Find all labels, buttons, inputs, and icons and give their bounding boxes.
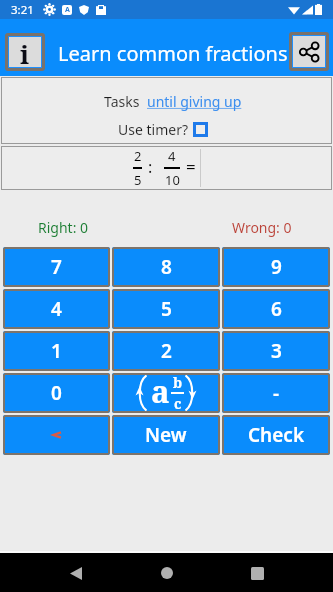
button[interactable]: 1 xyxy=(3,331,110,371)
button[interactable]: 4 xyxy=(3,289,110,329)
staticText: c xyxy=(174,394,182,413)
staticText: a xyxy=(151,373,170,410)
staticText: 1 xyxy=(51,338,62,364)
button[interactable]: Info xyxy=(9,37,41,67)
button[interactable]: Recents xyxy=(242,558,272,588)
staticText: 3 xyxy=(271,338,282,364)
staticText: 6 xyxy=(271,296,282,322)
staticText: 5 xyxy=(161,296,172,322)
button[interactable]: Check xyxy=(222,415,330,455)
button[interactable]: New xyxy=(112,415,220,455)
staticText: 2 xyxy=(134,147,142,165)
staticText: : xyxy=(148,156,153,178)
staticText: Wrong: 0 xyxy=(232,218,292,237)
button[interactable]: 7 xyxy=(3,247,110,287)
button[interactable]: Home xyxy=(152,558,182,588)
staticText: b xyxy=(173,373,183,392)
staticText: Learn common fractions xyxy=(58,40,288,67)
button[interactable]: Share xyxy=(293,36,325,67)
button[interactable]: Swap fraction form xyxy=(112,373,220,413)
staticText: 0 xyxy=(51,380,62,406)
staticText: Tasks xyxy=(104,92,140,111)
staticText: 2 xyxy=(161,338,172,364)
other: Backspace xyxy=(52,431,61,439)
button[interactable]: 0 xyxy=(3,373,110,413)
staticText: Check xyxy=(248,422,305,448)
staticText: Right: 0 xyxy=(38,218,89,237)
staticText: 4 xyxy=(168,147,176,165)
button[interactable]: 3 xyxy=(222,331,330,371)
button[interactable]: 6 xyxy=(222,289,330,329)
staticText: 10 xyxy=(165,171,180,189)
button[interactable]: - xyxy=(222,373,330,413)
staticText: - xyxy=(273,380,280,406)
button[interactable]: Back xyxy=(61,558,91,588)
staticText: i xyxy=(20,36,30,66)
staticText: New xyxy=(145,422,187,448)
staticText: 8 xyxy=(161,254,172,280)
staticText: 5 xyxy=(134,171,142,189)
staticText: 3:21 xyxy=(11,2,34,18)
button[interactable]: 2 xyxy=(112,331,220,371)
staticText: = xyxy=(186,155,196,178)
staticText: 7 xyxy=(51,254,62,280)
button[interactable]: until giving up xyxy=(147,92,242,111)
staticText: 4 xyxy=(51,296,62,322)
button[interactable]: Use timer checkbox xyxy=(193,122,208,137)
button[interactable]: 8 xyxy=(112,247,220,287)
staticText: 9 xyxy=(271,254,282,280)
staticText: Use timer? xyxy=(118,120,188,139)
button[interactable]: 5 xyxy=(112,289,220,329)
other: Swap fraction form xyxy=(113,373,219,413)
button[interactable]: Backspace xyxy=(3,415,110,455)
staticText: until giving up xyxy=(147,92,242,111)
button[interactable]: 9 xyxy=(222,247,330,287)
staticText: A xyxy=(65,5,70,15)
